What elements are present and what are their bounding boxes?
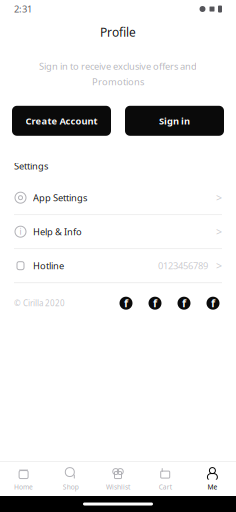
button[interactable]: Facebook xyxy=(175,294,193,312)
staticText: 2:31 xyxy=(14,3,32,15)
staticText: Me xyxy=(207,483,217,491)
staticText: © Cirilla 2020 xyxy=(14,298,65,308)
button[interactable]: Shop xyxy=(47,461,94,497)
button[interactable]: Cart xyxy=(142,461,189,497)
staticText: f xyxy=(211,296,215,310)
staticText: Profile xyxy=(100,24,136,40)
button[interactable]: i xyxy=(0,215,236,248)
button[interactable]: Sign in xyxy=(125,106,224,136)
button[interactable]: Facebook xyxy=(117,294,135,312)
button[interactable]: + xyxy=(0,249,236,282)
button[interactable]: Wishlist xyxy=(94,461,142,497)
staticText: > xyxy=(216,225,222,239)
staticText: Shop xyxy=(63,483,79,491)
staticText: f xyxy=(153,296,157,310)
staticText: f xyxy=(182,296,186,310)
staticText: Settings xyxy=(14,160,48,172)
button[interactable]: Facebook xyxy=(204,294,222,312)
staticText: f xyxy=(124,296,128,310)
staticText: Sign in to receive exclusive offers and xyxy=(39,60,197,72)
staticText: 0123456789 xyxy=(158,259,208,272)
staticText: Wishlist xyxy=(106,483,130,491)
staticText: > xyxy=(216,259,222,273)
button[interactable]: Create Account xyxy=(12,106,111,136)
staticText: Sign in xyxy=(159,115,190,127)
staticText: App Settings xyxy=(33,191,87,204)
staticText: Create Account xyxy=(25,115,97,127)
button[interactable]: App Settings xyxy=(0,181,236,214)
staticText: Hotline xyxy=(33,259,64,272)
staticText: Help & Info xyxy=(33,225,82,238)
staticText: Home xyxy=(14,483,33,491)
button[interactable]: Home xyxy=(0,461,47,497)
button[interactable]: Facebook xyxy=(146,294,164,312)
button[interactable]: Me xyxy=(189,461,236,497)
staticText: i xyxy=(19,226,21,237)
staticText: Cart xyxy=(159,483,172,491)
staticText: > xyxy=(216,191,222,205)
staticText: Promotions xyxy=(92,75,144,88)
